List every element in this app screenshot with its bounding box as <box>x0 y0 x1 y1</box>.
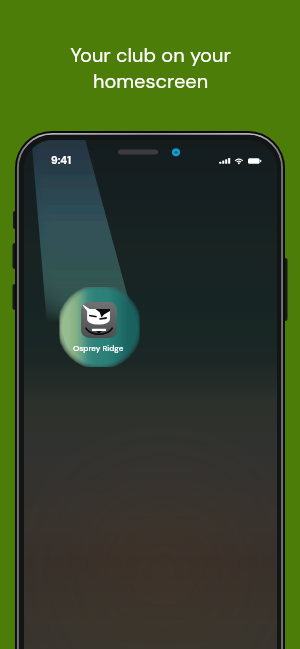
staticText: 9:41 <box>51 154 71 168</box>
button[interactable]: Osprey Ridge <box>61 302 136 353</box>
staticText: Osprey Ridge <box>73 343 124 353</box>
staticText: Your club on your homescreen <box>70 42 231 95</box>
